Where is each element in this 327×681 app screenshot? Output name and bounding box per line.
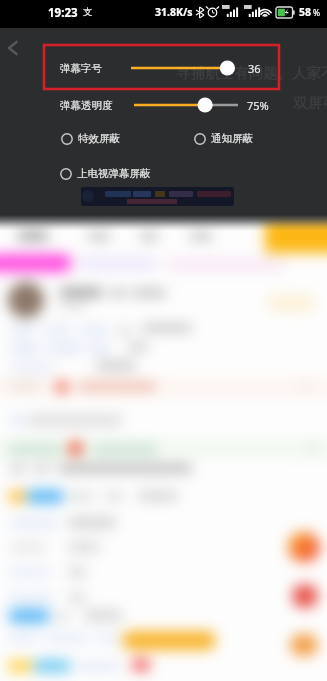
button[interactable]: Slider — [131, 60, 235, 76]
button[interactable]: 特效屏蔽 — [61, 132, 120, 145]
button[interactable]: 上电视弹幕屏蔽 — [60, 167, 151, 180]
staticText: 75% — [247, 98, 269, 113]
staticText: 19:23 — [48, 5, 78, 21]
staticText: 36 — [248, 61, 261, 76]
staticText: 弹幕字号 — [60, 62, 102, 75]
staticText: 双屏可 — [293, 94, 327, 112]
staticText: 支 — [83, 6, 93, 18]
staticText: 特效屏蔽 — [78, 132, 120, 145]
button[interactable]: 通知屏蔽 — [194, 132, 253, 145]
staticText: 通知屏蔽 — [211, 132, 253, 145]
button[interactable]: Back — [1, 37, 23, 59]
staticText: 31.8K/s — [155, 5, 193, 19]
button[interactable]: Slider — [134, 97, 238, 113]
staticText: 58 — [299, 5, 312, 19]
staticText: 上电视弹幕屏蔽 — [77, 167, 151, 180]
staticText: 弹幕透明度 — [60, 99, 113, 112]
staticText: 寻捕航空有问题。人家不 — [176, 64, 327, 82]
staticText: % — [313, 7, 321, 19]
